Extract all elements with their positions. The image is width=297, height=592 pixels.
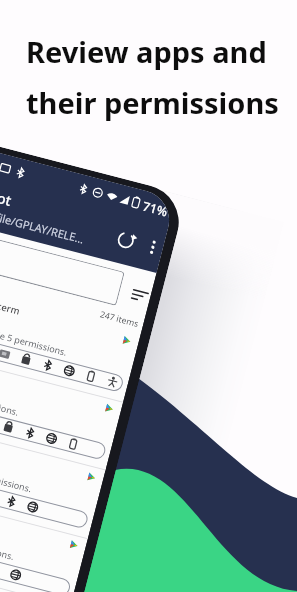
staticText: Hierdie toepassing en al sy dienste gebr… xyxy=(0,277,68,358)
button[interactable]: Kalender xyxy=(0,312,123,470)
staticText: Hierdie toepassing en al sy dienste gebr… xyxy=(0,413,33,494)
staticText: Hierdie toepassing en al sy dienste gebr… xyxy=(0,345,21,418)
staticText: apps.co.za/store/apps/toestemm/file/GPLA… xyxy=(0,166,87,247)
staticText: 71% xyxy=(141,198,169,220)
button[interactable]: Sekuriteit, privaatheid en toegang tot s… xyxy=(0,244,141,403)
button[interactable]: Kamera xyxy=(0,448,88,592)
staticText: Review apps and their permissions xyxy=(26,32,279,123)
button[interactable]: More options xyxy=(138,233,166,261)
button[interactable] xyxy=(0,194,125,306)
button[interactable]: Kontakte xyxy=(0,380,105,539)
staticText: Toestemmingbestuur-robot xyxy=(0,145,14,210)
button[interactable]: Sort xyxy=(128,283,153,308)
button[interactable]: Refresh xyxy=(111,226,140,255)
staticText: 247 items xyxy=(79,303,140,330)
staticText: Sekuriteit, privaatheid en toegang tot s… xyxy=(0,250,21,318)
staticText: Hierdie toepassing en al sy dienste gebr… xyxy=(0,481,16,562)
